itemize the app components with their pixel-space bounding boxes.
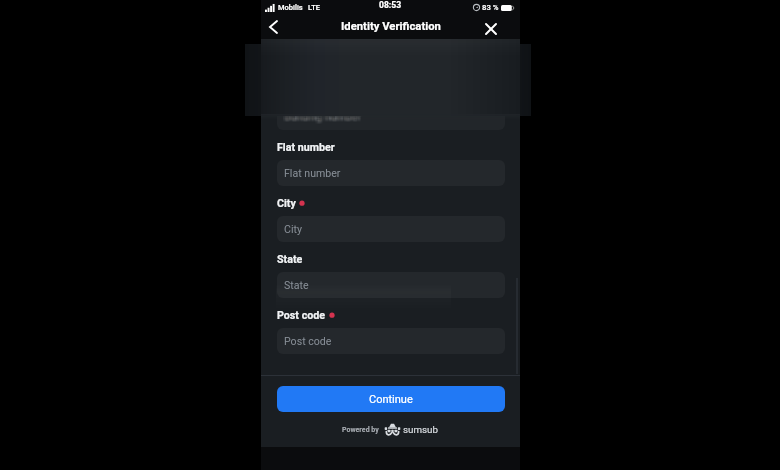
staticText: Building number [282,111,359,123]
staticText: Building number [285,109,362,121]
staticText: Building number [284,110,361,122]
staticText: Building number [283,109,360,121]
staticText: City [277,197,296,210]
staticText: Building number [284,110,361,122]
staticText: Continue [369,393,413,406]
staticText: Building number [284,111,361,123]
staticText: Building number [283,110,360,122]
staticText: Building number [284,112,361,124]
staticText: 83 % [482,3,499,12]
staticText: Building number [283,109,360,121]
staticText: Building number [282,112,359,124]
staticText: Building number [282,109,359,121]
staticText: Building number [283,111,360,123]
button[interactable]: Back [263,17,283,37]
staticText: Building number [284,109,361,121]
staticText: Building number [286,110,363,122]
staticText: Building number [283,112,360,124]
staticText: Building number [283,111,360,123]
staticText: sumsub [403,424,439,435]
staticText: Building number [284,111,361,123]
staticText: LTE [308,3,321,12]
staticText: Building number [282,111,359,123]
staticText: Building number [284,109,361,121]
staticText: State [284,279,309,291]
staticText: Building number [283,110,360,122]
staticText: Building number [284,111,361,123]
staticText: Building number [285,110,362,122]
staticText: Flat number [284,167,341,179]
button[interactable]: Flat number [277,160,505,186]
staticText: Building number [285,110,362,122]
button[interactable]: State [277,272,505,298]
staticText: Building number [285,110,362,122]
staticText: Building number [286,111,363,123]
staticText: Building number [284,110,361,122]
staticText: Building number [282,110,359,122]
staticText: 08:53 [379,0,402,10]
staticText: Building number [285,111,362,123]
staticText: Post code [284,335,332,347]
staticText: Building number [285,111,362,123]
staticText: Building number [284,109,361,121]
button[interactable]: Building number [277,104,505,130]
staticText: Building number [284,111,361,123]
staticText: Building number [286,110,363,122]
button[interactable]: Post code [277,328,505,354]
staticText: Building number [284,110,361,122]
button[interactable]: Close [481,19,501,39]
staticText: Building number [285,111,362,123]
staticText: Post code [277,309,326,322]
staticText: Building number [285,110,362,122]
staticText: City [284,223,302,235]
staticText: Building number [285,109,362,121]
staticText: Building number [284,109,361,121]
staticText: Building number [286,109,363,121]
staticText: Building number [282,110,359,122]
staticText: Building number [286,109,363,121]
staticText: Flat number [277,141,335,154]
staticText: Mobilis [278,3,303,12]
staticText: State [277,253,303,266]
button[interactable]: City [277,216,505,242]
staticText: Building number [285,112,362,124]
staticText: Building number [285,112,362,124]
staticText: Powered by [342,426,379,434]
staticText: Building number [282,109,359,121]
staticText: Building number [285,111,362,123]
staticText: Identity Verification [341,20,441,33]
staticText: Building number [285,109,362,121]
staticText: Building number [284,112,361,124]
button[interactable]: Continue [277,386,505,412]
staticText: Building number [286,112,363,124]
staticText: Building number [285,109,362,121]
staticText: Building number [286,111,363,123]
